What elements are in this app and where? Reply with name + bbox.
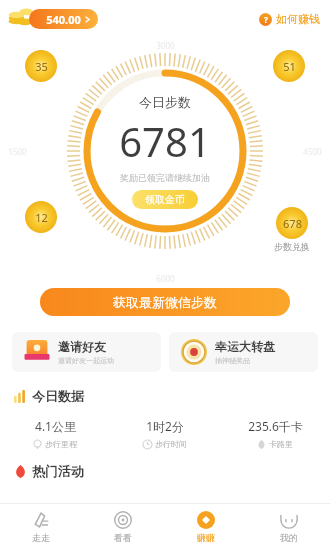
staticText: 4.1公里 [35,418,76,434]
staticText: 获取最新微信步数 [113,294,217,310]
button[interactable]: 幸运大转盘 [169,332,318,372]
button[interactable]: Coin 35 [25,50,57,82]
staticText: 今日数据 [32,388,84,404]
staticText: 步数兑换 [274,241,310,252]
staticText: 走走 [32,532,50,543]
staticText: 1500 [8,146,27,157]
staticText: 邀请好友 [58,339,106,354]
staticText: 幸运大转盘 [215,339,275,354]
staticText: 抽神秘奖品 [215,356,250,365]
staticText: 邀请好友一起运动 [58,356,114,365]
button[interactable]: 赚赚 [164,504,247,550]
staticText: 奖励已领完请继续加油 [120,172,210,183]
staticText: 看看 [114,532,132,543]
button[interactable]: Coin 678 [276,207,308,239]
staticText: 35 [35,59,48,74]
staticText: 我的 [280,532,298,543]
button[interactable]: Coin balance 540.00 [8,7,111,31]
staticText: ? [264,14,268,25]
staticText: 6781 [119,114,211,168]
staticText: 1时2分 [146,418,184,434]
button[interactable]: 邀请好友 [12,332,161,372]
staticText: 3000 [156,40,175,51]
staticText: 235.6千卡 [248,418,303,434]
button[interactable]: 235.6千卡 [220,418,330,449]
staticText: 赚赚 [197,532,215,543]
button[interactable]: 我的 [247,504,330,550]
staticText: 步行里程 [45,439,77,449]
staticText: 12 [35,210,48,225]
staticText: 如何赚钱 [276,12,320,26]
staticText: 540.00 [46,12,81,27]
button[interactable]: 看看 [82,504,164,550]
staticText: 51 [283,59,296,74]
button[interactable]: 获取最新微信步数 [40,288,290,316]
button[interactable]: 领取金币 [132,190,198,209]
button[interactable]: Coin 51 [273,50,305,82]
staticText: 678 [283,216,302,231]
staticText: 步行时间 [155,439,187,449]
staticText: 热门活动 [32,463,84,479]
button[interactable]: ? [259,12,320,26]
staticText: 领取金币 [145,193,185,206]
button[interactable]: Coin 12 [25,201,57,233]
staticText: 6000 [156,273,175,284]
button[interactable]: 走走 [0,504,82,550]
staticText: 今日步数 [139,94,191,110]
button[interactable]: 1时2分 [110,418,220,449]
button[interactable]: 4.1公里 [0,418,110,449]
staticText: 4500 [303,146,322,157]
staticText: 卡路里 [269,439,293,449]
